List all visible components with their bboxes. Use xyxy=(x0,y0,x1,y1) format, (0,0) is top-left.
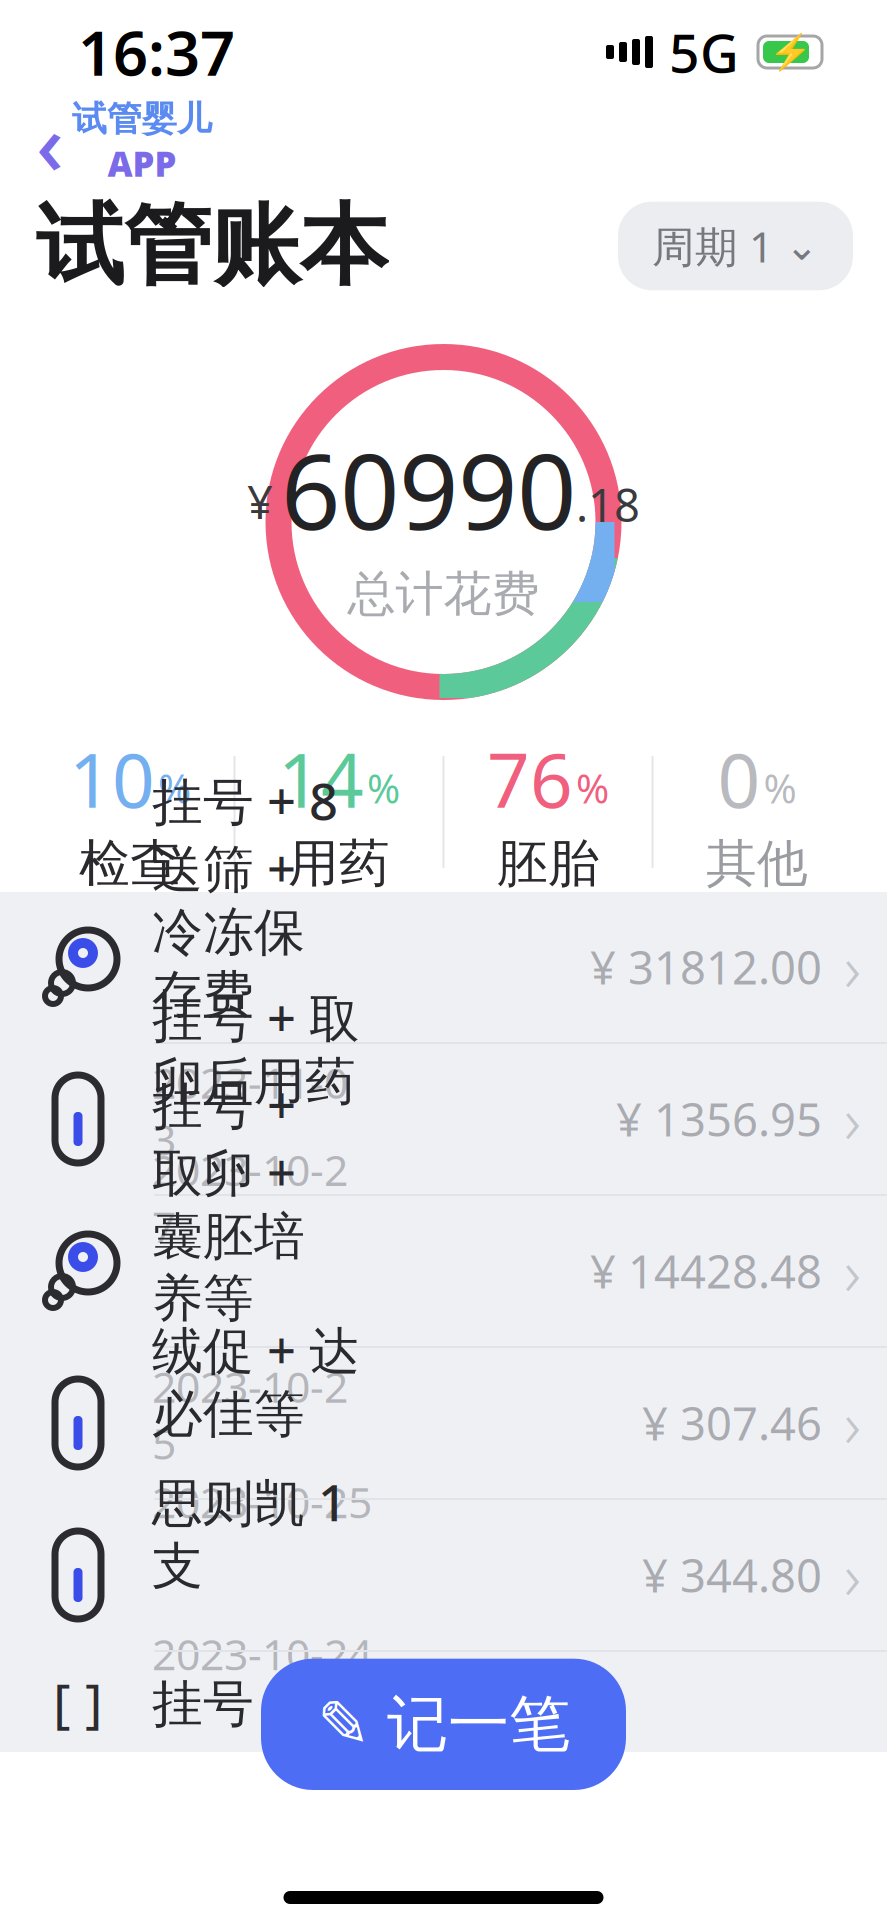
button[interactable]: 挂号 + 取卵 + 囊胚培养等 xyxy=(0,1196,887,1346)
staticText: 16:37 xyxy=(78,11,235,93)
staticText: 试管账本 xyxy=(36,192,388,300)
staticText: 其他 xyxy=(706,832,808,895)
button[interactable]: ✎ xyxy=(261,1659,626,1790)
button[interactable]: 周期 1 xyxy=(618,202,853,290)
staticText: 2023-10-24 xyxy=(152,1625,372,1682)
staticText: › xyxy=(844,1380,861,1465)
staticText: % xyxy=(576,761,609,814)
staticText: 76 xyxy=(487,729,573,828)
staticText: ¥ xyxy=(247,471,273,532)
staticText: › xyxy=(844,1228,861,1313)
staticText: ¥ 31812.00 xyxy=(590,937,822,997)
staticText: ¥ 344.80 xyxy=(642,1545,822,1605)
staticText: .18 xyxy=(576,474,640,535)
staticText: 2023-10-25 xyxy=(152,1473,372,1530)
staticText: ⚡ xyxy=(768,32,811,72)
staticText: 胚胎 xyxy=(497,832,599,895)
button[interactable]: [ ] xyxy=(0,1652,887,1752)
staticText: ‹ xyxy=(36,85,64,199)
staticText: ⌄ xyxy=(785,223,819,269)
staticText: ✎ xyxy=(317,1688,371,1761)
staticText: 总计花费 xyxy=(347,565,539,624)
staticText: 5G xyxy=(669,17,739,87)
staticText: ¥ 307.46 xyxy=(642,1393,822,1453)
staticText: [ ] xyxy=(53,1667,103,1737)
button[interactable]: 挂号 + 8 送筛 + 冷冻保存费 xyxy=(0,892,887,1042)
button[interactable]: Back xyxy=(28,81,220,203)
staticText: 挂号 + 8 送筛 + 冷冻保存费 xyxy=(152,767,338,1026)
staticText: 2023-10-25 xyxy=(152,1358,348,1471)
staticText: 记一笔 xyxy=(387,1687,570,1762)
staticText: 2023-11-03 xyxy=(152,1054,348,1167)
staticText: 周期 1 xyxy=(652,218,773,274)
staticText: 挂号 + 取卵后用药 xyxy=(152,984,360,1113)
staticText: ¥ 14428.48 xyxy=(590,1241,822,1301)
staticText: 挂号 + 明天抽血 b 超 xyxy=(152,1668,623,1736)
staticText: 用药 xyxy=(288,832,390,895)
staticText: 绒促 + 达必佳等 xyxy=(152,1316,360,1445)
button[interactable]: 挂号 + 取卵后用药 xyxy=(0,1044,887,1194)
staticText: 0 xyxy=(717,729,760,828)
staticText: › xyxy=(844,1532,861,1617)
staticText: 挂号 + 取卵 + 囊胚培养等 xyxy=(152,1071,305,1330)
staticText: 思则凯 1 支 xyxy=(152,1468,347,1597)
staticText: APP xyxy=(107,140,176,186)
button[interactable]: 思则凯 1 支 xyxy=(0,1500,887,1650)
staticText: 14 xyxy=(278,729,364,828)
staticText: 60990 xyxy=(281,420,576,559)
staticText: % xyxy=(158,761,191,814)
staticText: 2023-10-27 xyxy=(152,1141,348,1254)
staticText: › xyxy=(844,924,861,1009)
staticText: % xyxy=(367,761,400,814)
staticText: › xyxy=(844,1076,861,1161)
button[interactable]: 绒促 + 达必佳等 xyxy=(0,1348,887,1498)
staticText: ¥ 1356.95 xyxy=(616,1089,822,1149)
staticText: 检查 xyxy=(79,832,181,895)
staticText: % xyxy=(763,761,796,814)
staticText: 试管婴儿 xyxy=(72,98,212,140)
staticText: 10 xyxy=(69,729,155,828)
